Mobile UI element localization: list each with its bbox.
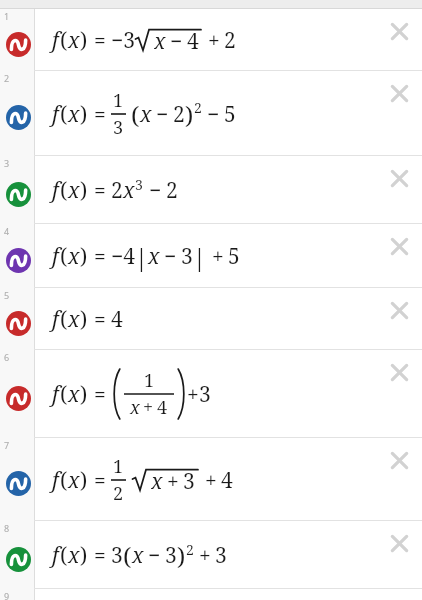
- staticText: +: [208, 26, 220, 55]
- staticText: 6: [4, 351, 10, 363]
- staticText: −: [148, 541, 161, 570]
- button[interactable]: 6: [0, 350, 422, 438]
- staticText: 3: [183, 467, 195, 494]
- staticText: f: [52, 380, 59, 409]
- button[interactable]: 4: [0, 224, 422, 288]
- staticText: 3: [199, 380, 211, 409]
- staticText: +: [212, 242, 224, 271]
- staticText: 2: [194, 98, 202, 117]
- staticText: (: [60, 380, 68, 409]
- staticText: (: [123, 539, 132, 572]
- staticText: 2: [173, 100, 185, 129]
- staticText: x: [68, 466, 80, 495]
- staticText: |: [135, 241, 148, 272]
- staticText: 2: [166, 176, 178, 205]
- staticText: ): [80, 242, 88, 271]
- staticText: =: [94, 26, 106, 55]
- staticText: x: [68, 242, 80, 271]
- staticText: 8: [4, 522, 10, 534]
- button[interactable]: Delete expression: [383, 77, 416, 110]
- staticText: (: [60, 242, 68, 271]
- button[interactable]: Delete expression: [383, 356, 416, 389]
- staticText: 3: [113, 115, 124, 140]
- button[interactable]: Delete expression: [383, 294, 416, 327]
- staticText: (: [60, 100, 68, 129]
- staticText: 4: [187, 27, 199, 54]
- staticText: 3: [181, 242, 193, 271]
- staticText: 3: [165, 541, 177, 570]
- button[interactable]: 7: [0, 438, 422, 521]
- button[interactable]: Delete expression: [383, 230, 416, 263]
- staticText: 2: [186, 540, 194, 559]
- staticText: 3: [135, 175, 143, 194]
- staticText: |: [193, 241, 206, 272]
- staticText: x: [151, 467, 163, 494]
- staticText: x: [68, 305, 80, 334]
- staticText: 2: [111, 176, 123, 205]
- staticText: −3: [111, 26, 135, 55]
- staticText: ): [80, 466, 88, 495]
- staticText: 2: [113, 481, 124, 506]
- staticText: ): [80, 100, 88, 129]
- staticText: +: [205, 466, 217, 495]
- staticText: (: [60, 305, 68, 334]
- staticText: 9: [4, 590, 10, 600]
- staticText: ): [80, 176, 88, 205]
- button[interactable]: 1: [0, 9, 422, 71]
- staticText: =: [94, 100, 106, 129]
- staticText: =: [94, 541, 106, 570]
- staticText: x: [154, 27, 166, 54]
- staticText: 1: [4, 10, 10, 22]
- staticText: f: [52, 26, 59, 55]
- staticText: x: [68, 176, 80, 205]
- staticText: ): [80, 305, 88, 334]
- staticText: +: [199, 541, 211, 570]
- staticText: (: [60, 176, 68, 205]
- staticText: 1: [113, 88, 124, 113]
- staticText: x: [140, 100, 152, 129]
- staticText: x: [148, 242, 160, 271]
- staticText: f: [52, 541, 59, 570]
- button[interactable]: 2: [0, 71, 422, 156]
- staticText: +: [187, 380, 199, 409]
- button[interactable]: 8: [0, 521, 422, 589]
- staticText: 1: [144, 368, 155, 393]
- staticText: f: [52, 100, 59, 129]
- staticText: x: [68, 100, 80, 129]
- staticText: −: [207, 100, 220, 129]
- staticText: f: [52, 176, 59, 205]
- staticText: ): [185, 98, 194, 131]
- staticText: x: [123, 176, 135, 205]
- staticText: 2: [224, 26, 236, 55]
- staticText: ): [177, 539, 186, 572]
- staticText: ): [80, 380, 88, 409]
- staticText: (: [131, 98, 140, 131]
- staticText: f: [52, 305, 59, 334]
- staticText: x: [130, 395, 140, 420]
- staticText: =: [94, 466, 106, 495]
- staticText: 5: [224, 100, 236, 129]
- staticText: (: [60, 26, 68, 55]
- staticText: 4: [221, 466, 233, 495]
- staticText: x: [68, 541, 80, 570]
- button[interactable]: Delete expression: [383, 15, 416, 48]
- staticText: 3: [111, 541, 123, 570]
- staticText: −4: [111, 242, 135, 271]
- staticText: =: [94, 242, 106, 271]
- staticText: 2: [4, 72, 10, 84]
- staticText: +: [167, 467, 179, 494]
- staticText: 3: [4, 157, 10, 169]
- staticText: −: [149, 176, 162, 205]
- button[interactable]: 9: [0, 589, 422, 600]
- button[interactable]: 3: [0, 156, 422, 224]
- button[interactable]: Delete expression: [383, 444, 416, 477]
- staticText: f: [52, 466, 59, 495]
- button[interactable]: Delete expression: [383, 162, 416, 195]
- staticText: 4: [4, 225, 10, 237]
- staticText: −: [156, 100, 169, 129]
- staticText: (: [60, 466, 68, 495]
- button[interactable]: 5: [0, 288, 422, 350]
- button[interactable]: Delete expression: [383, 527, 416, 560]
- staticText: 7: [4, 439, 10, 451]
- staticText: x: [132, 541, 144, 570]
